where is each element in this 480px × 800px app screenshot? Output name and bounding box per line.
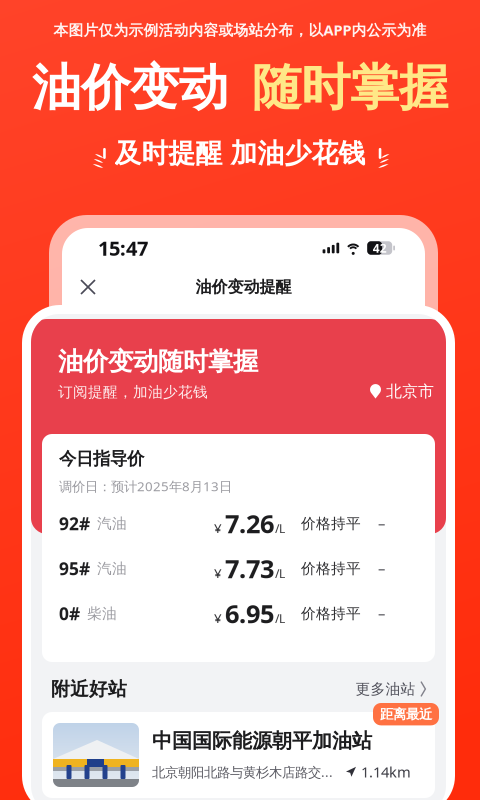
staticText: ¥ <box>214 564 222 582</box>
staticText: 95# <box>59 557 90 580</box>
staticText: 价格持平 <box>301 604 361 622</box>
staticText: 15:47 <box>98 235 148 261</box>
staticText: 北京朝阳北路与黄杉木店路交叉… <box>152 763 341 781</box>
staticText: 1.14km <box>361 762 411 781</box>
staticText: – <box>378 604 385 623</box>
staticText: – <box>378 559 385 578</box>
button[interactable]: 关闭 <box>72 271 104 303</box>
staticText: 订阅提醒，加油少花钱 <box>58 383 208 401</box>
staticText: 42 <box>373 240 387 256</box>
button[interactable]: 更多油站 <box>355 680 426 698</box>
staticText: 柴油 <box>87 604 117 622</box>
staticText: 本图片仅为示例活动内容或场站分布，以APP内公示为准 <box>53 20 426 39</box>
staticText: /L <box>275 521 285 537</box>
staticText: 7.73 <box>225 552 274 585</box>
staticText: 随时掌握 <box>252 57 448 118</box>
button[interactable]: 北京市 <box>370 381 434 401</box>
button[interactable]: 中国国际能源朝平加油站 <box>42 712 435 798</box>
staticText: /L <box>275 611 285 627</box>
staticText: 附近好站 <box>51 677 127 700</box>
staticText: 中国国际能源朝平加油站 <box>152 728 372 753</box>
staticText: – <box>378 514 385 533</box>
staticText: /L <box>275 566 285 582</box>
staticText: ¥ <box>214 519 222 537</box>
staticText: 价格持平 <box>301 514 361 532</box>
staticText: 价格持平 <box>301 559 361 577</box>
staticText: 6.95 <box>225 597 274 630</box>
staticText: 汽油 <box>97 514 127 532</box>
staticText: 北京市 <box>386 381 434 401</box>
staticText: 今日指导价 <box>59 448 144 469</box>
staticText: 0# <box>59 602 80 625</box>
staticText: ¥ <box>214 609 222 627</box>
staticText: 油价变动 <box>32 57 228 118</box>
staticText: 7.26 <box>225 507 274 540</box>
staticText: 油价变动提醒 <box>195 277 291 297</box>
staticText: 调价日：预计2025年8月13日 <box>59 477 232 495</box>
staticText: 油价变动随时掌握 <box>58 346 258 377</box>
staticText: 92# <box>59 512 90 535</box>
staticText: 更多油站 <box>355 680 415 698</box>
staticText: 距离最近 <box>380 706 432 722</box>
staticText: 汽油 <box>97 559 127 577</box>
staticText: 及时提醒 加油少花钱 <box>114 137 365 170</box>
